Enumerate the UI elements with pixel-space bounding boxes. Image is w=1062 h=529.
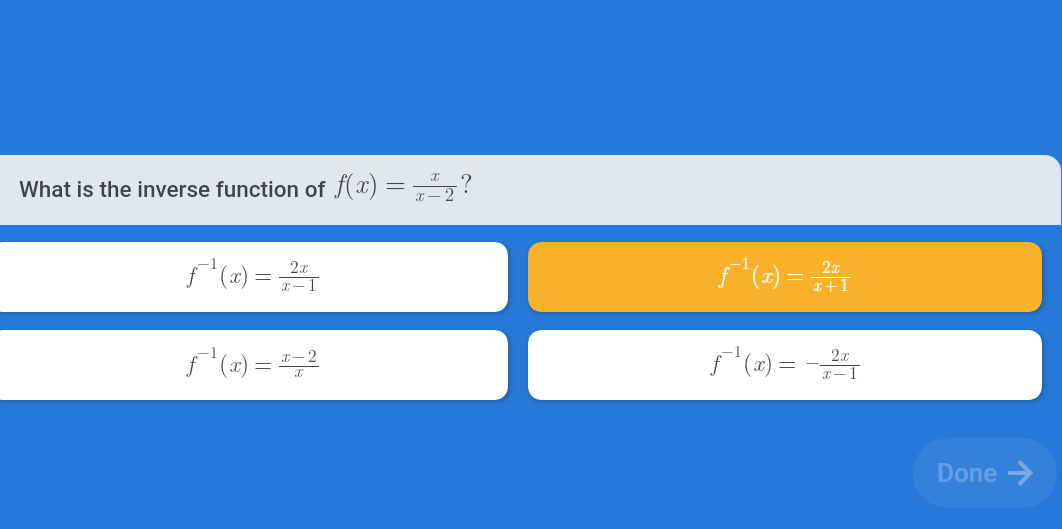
- staticText: =: [778, 345, 797, 378]
- staticText: ): [240, 346, 250, 379]
- staticText: =: [385, 163, 407, 201]
- button[interactable]: Done: [913, 438, 1057, 508]
- staticText: +: [824, 271, 838, 296]
- staticText: 2: [290, 253, 299, 278]
- staticText: −1: [197, 339, 219, 362]
- staticText: What is the inverse function of: [19, 176, 332, 202]
- staticText: 2: [445, 180, 455, 206]
- staticText: x: [281, 271, 290, 296]
- button[interactable]: f: [528, 242, 1042, 312]
- staticText: x: [430, 160, 439, 186]
- staticText: x: [840, 341, 849, 366]
- staticText: x: [753, 345, 764, 378]
- staticText: f: [335, 163, 344, 201]
- staticText: f: [187, 257, 195, 290]
- staticText: 1: [308, 271, 317, 296]
- staticText: x: [229, 257, 240, 290]
- button[interactable]: f: [0, 330, 508, 400]
- staticText: 2: [831, 341, 840, 366]
- staticText: x: [831, 253, 840, 278]
- staticText: ): [764, 345, 774, 378]
- staticText: x: [415, 180, 424, 206]
- other: Next: [1008, 461, 1033, 485]
- staticText: (: [219, 257, 229, 290]
- staticText: =: [254, 257, 273, 290]
- staticText: =: [786, 257, 805, 290]
- staticText: x: [355, 163, 368, 201]
- staticText: x: [813, 271, 822, 296]
- staticText: (: [743, 345, 753, 378]
- staticText: −1: [729, 250, 751, 273]
- staticText: 1: [849, 359, 858, 384]
- staticText: (: [344, 163, 355, 201]
- staticText: ): [772, 257, 782, 290]
- staticText: ): [368, 163, 379, 201]
- staticText: −: [427, 180, 442, 206]
- staticText: 1: [840, 271, 849, 296]
- staticText: 2: [308, 342, 317, 367]
- staticText: −: [833, 359, 847, 384]
- staticText: f: [187, 346, 195, 379]
- staticText: x: [229, 346, 240, 379]
- staticText: (: [219, 346, 229, 379]
- staticText: −: [292, 271, 306, 296]
- staticText: 2: [822, 253, 831, 278]
- button[interactable]: f: [0, 242, 508, 312]
- staticText: ): [240, 257, 250, 290]
- staticText: −1: [197, 250, 219, 273]
- staticText: (: [751, 257, 761, 290]
- staticText: x: [294, 357, 303, 382]
- staticText: Done: [937, 458, 998, 488]
- staticText: −: [292, 342, 306, 367]
- staticText: ?: [460, 163, 473, 201]
- staticText: x: [761, 257, 772, 290]
- staticText: f: [711, 345, 719, 378]
- staticText: x: [299, 253, 308, 278]
- staticText: f: [719, 257, 727, 290]
- staticText: =: [254, 346, 273, 379]
- staticText: x: [281, 342, 290, 367]
- button[interactable]: f: [528, 330, 1042, 400]
- staticText: −1: [721, 338, 743, 361]
- staticText: −: [805, 347, 820, 374]
- staticText: x: [822, 359, 831, 384]
